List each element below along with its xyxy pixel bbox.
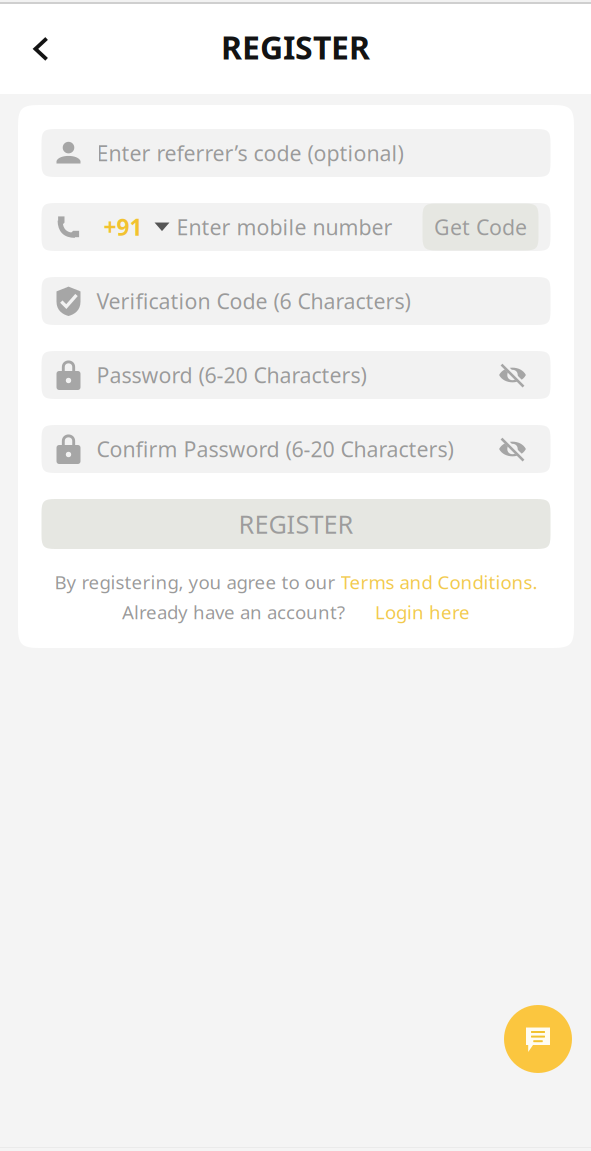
button[interactable]: Login here xyxy=(345,600,470,624)
staticText: Enter mobile number xyxy=(176,213,392,241)
button[interactable]: Chat support xyxy=(504,1005,572,1073)
staticText: Already have an account? xyxy=(122,600,345,624)
button[interactable]: Select country code xyxy=(81,203,176,251)
staticText: Login here xyxy=(375,600,470,624)
staticText: Confirm Password (6-20 Characters) xyxy=(96,435,453,463)
button[interactable]: Terms and Conditions. xyxy=(340,570,537,594)
button[interactable]: Get Code xyxy=(422,203,538,250)
staticText: By registering, you agree to our xyxy=(54,570,340,594)
staticText: Enter referrer’s code (optional) xyxy=(96,139,403,167)
button[interactable]: Show password xyxy=(488,351,536,399)
staticText: Password (6-20 Characters) xyxy=(96,361,366,389)
staticText: Get Code xyxy=(434,213,527,241)
staticText: REGISTER xyxy=(238,507,353,541)
button[interactable]: Show password xyxy=(488,425,536,473)
staticText: +91 xyxy=(103,212,142,242)
staticText: Terms and Conditions. xyxy=(340,570,537,594)
button[interactable]: REGISTER xyxy=(41,499,550,549)
staticText: REGISTER xyxy=(221,26,370,68)
button[interactable]: Back xyxy=(11,17,71,77)
staticText: Verification Code (6 Characters) xyxy=(96,287,410,315)
